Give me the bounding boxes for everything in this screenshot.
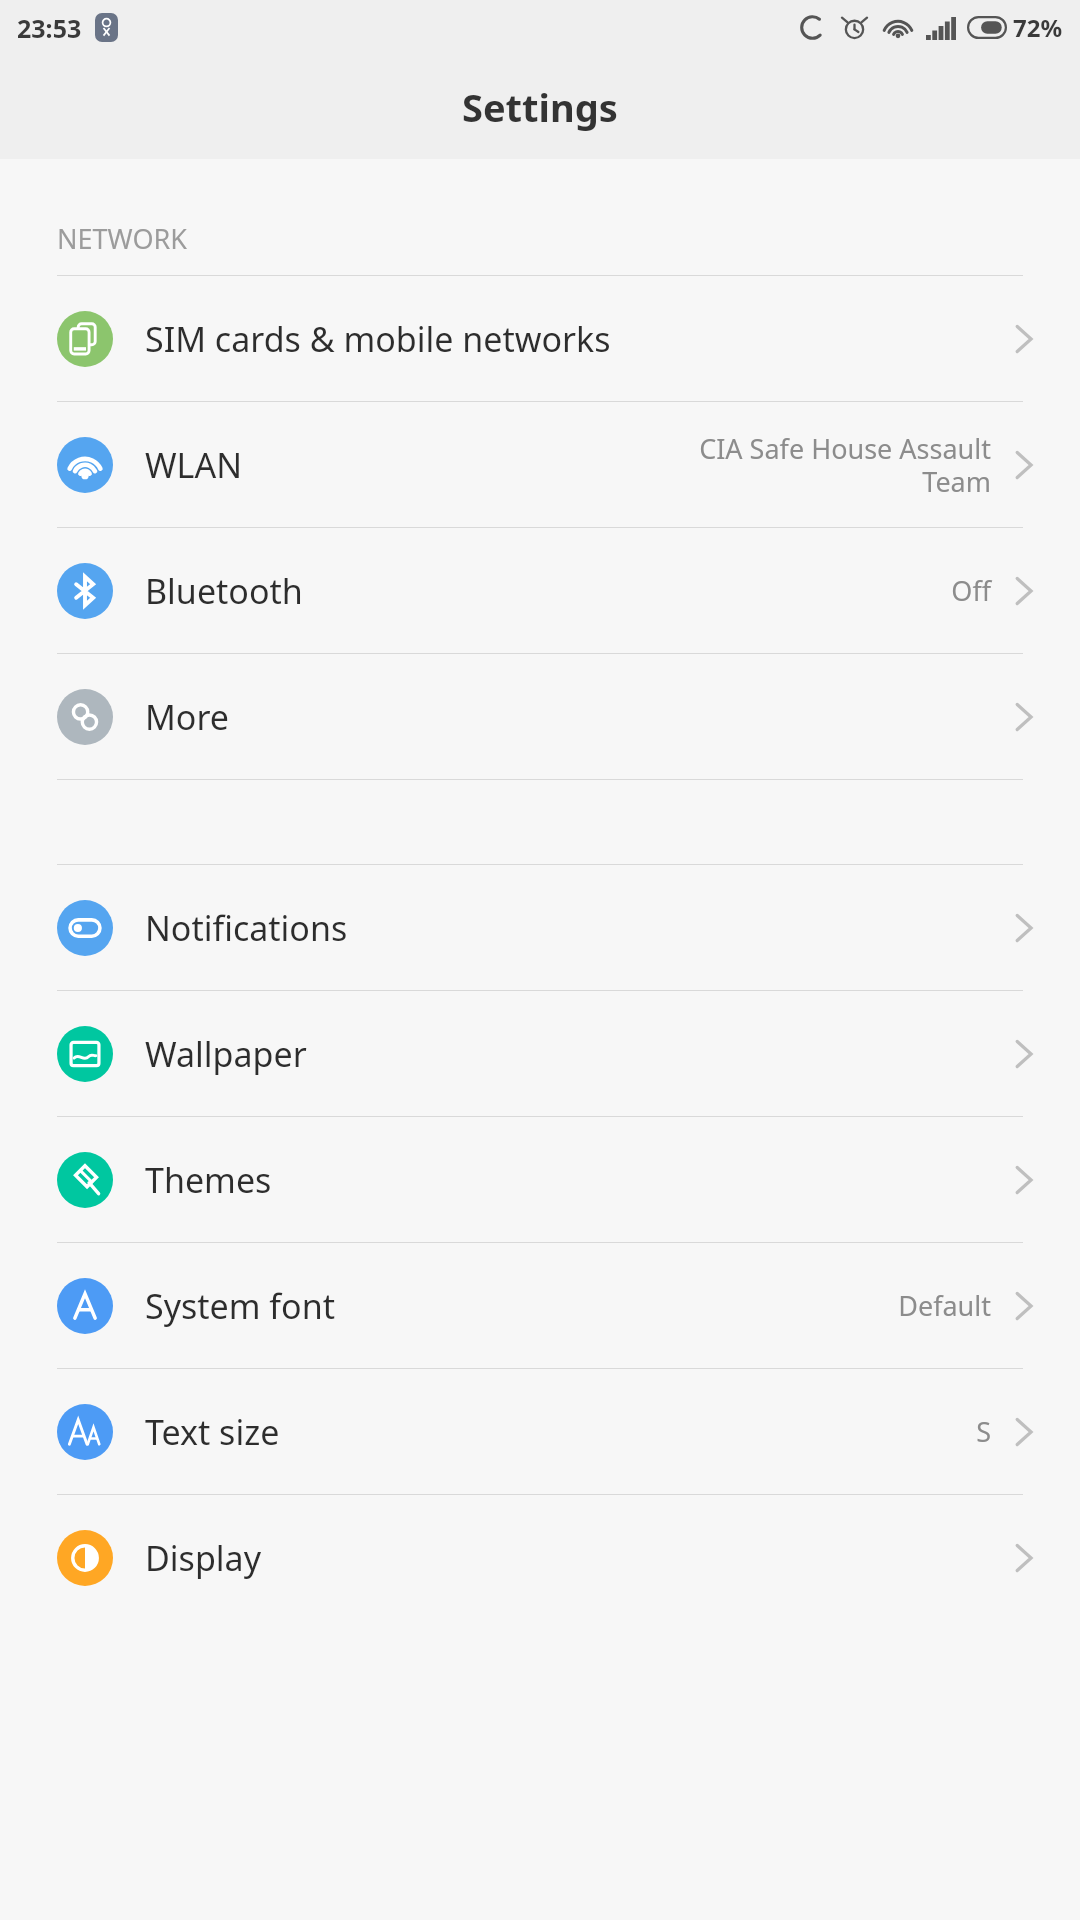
other: Screenshot tool — [95, 13, 118, 42]
button[interactable]: Display — [0, 1495, 1080, 1620]
staticText: Bluetooth — [145, 568, 303, 614]
staticText: Text size — [145, 1409, 280, 1455]
staticText: Default — [898, 1287, 991, 1324]
staticText: 23:53 — [17, 11, 82, 45]
button[interactable]: WLAN — [0, 402, 1080, 527]
button[interactable]: System font — [0, 1243, 1080, 1368]
button[interactable]: More — [0, 654, 1080, 779]
button[interactable]: Wallpaper — [0, 991, 1080, 1116]
staticText: Wallpaper — [145, 1031, 307, 1077]
button[interactable]: Themes — [0, 1117, 1080, 1242]
staticText: WLAN — [145, 442, 243, 488]
staticText: Off — [951, 572, 991, 609]
staticText: Settings — [462, 81, 618, 133]
staticText: Display — [145, 1535, 261, 1581]
staticText: Themes — [145, 1157, 272, 1203]
button[interactable]: Bluetooth — [0, 528, 1080, 653]
button[interactable]: SIM cards & mobile networks — [0, 276, 1080, 401]
staticText: SIM cards & mobile networks — [145, 316, 611, 362]
staticText: S — [976, 1413, 991, 1450]
button[interactable]: Text size — [0, 1369, 1080, 1494]
staticText: Notifications — [145, 905, 348, 951]
button[interactable]: Notifications — [0, 865, 1080, 990]
staticText: System font — [145, 1283, 335, 1329]
staticText: CIA Safe House Assault Team — [699, 430, 991, 500]
staticText: 72% — [1013, 11, 1063, 44]
staticText: NETWORK — [57, 220, 187, 257]
staticText: More — [145, 694, 229, 740]
